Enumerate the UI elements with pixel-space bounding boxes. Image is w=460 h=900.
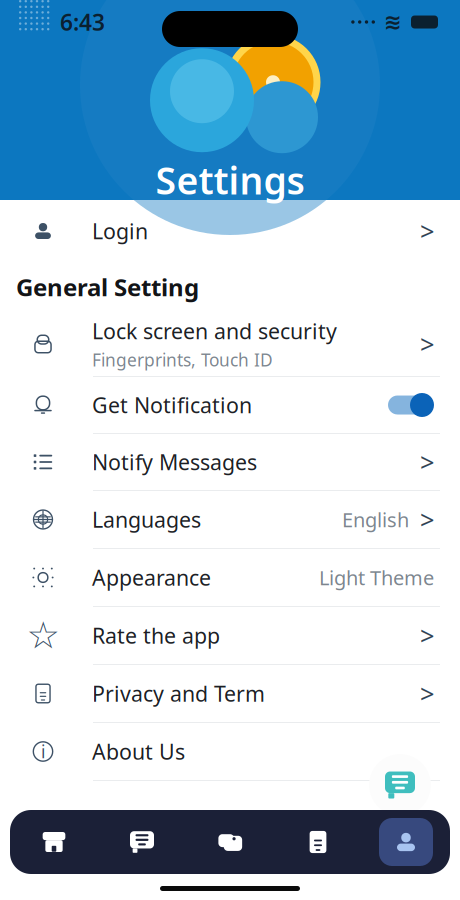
button[interactable]: Profile [362,810,450,874]
staticText: > [420,503,434,536]
staticText: Privacy and Term [92,679,265,708]
staticText: Fingerprints, Touch ID [92,348,273,371]
staticText: > [420,214,434,248]
staticText: Appearance [92,563,211,592]
staticText: General Setting [16,271,199,303]
button[interactable]: Documents [274,810,362,874]
button[interactable]: Messages [98,810,186,874]
staticText: Light Theme [319,564,434,591]
staticText: Get Notification [92,391,252,419]
staticText: > [420,445,434,479]
staticText: Lock screen and security [92,317,337,345]
staticText: Login [92,217,148,245]
button[interactable]: Notify Messages [0,434,460,491]
staticText: English [342,506,409,533]
button[interactable]: ☆ [0,607,460,665]
staticText: Settings [155,155,304,205]
staticText: 6:43 [60,7,105,37]
button[interactable]: Lock screen and security [0,312,460,377]
staticText: Rate the app [92,621,220,650]
staticText: i [41,740,45,763]
staticText: > [420,619,434,652]
staticText: ≋ [384,10,402,34]
staticText: > [420,327,434,361]
staticText: Languages [92,505,201,534]
button[interactable]: Home [10,810,98,874]
button[interactable]: Get Notification [0,377,460,434]
button[interactable]: Login [0,200,460,262]
button[interactable]: Chat support [369,754,431,816]
staticText: Notify Messages [92,448,257,476]
button[interactable]: Appearance [0,549,460,607]
staticText: > [420,677,434,710]
button[interactable]: Gallery [186,810,274,874]
staticText: ☆ [26,614,59,657]
button[interactable]: i [0,723,460,781]
staticText: About Us [92,737,185,766]
button[interactable]: Languages [0,491,460,549]
button[interactable]: Privacy and Term [0,665,460,723]
